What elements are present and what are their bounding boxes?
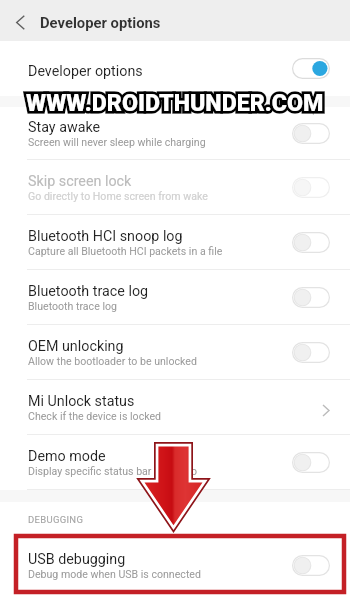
button[interactable]: Stay awake (0, 107, 350, 160)
button[interactable]: USB debugging (0, 536, 350, 594)
staticText: Capture all Bluetooth HCI packets in a f… (28, 245, 223, 257)
staticText: Go directly to Home screen from wake (28, 190, 208, 202)
staticText: DEBUGGING (28, 514, 84, 525)
staticText: WWW.DROIDTHUNDER.COM (26, 89, 324, 116)
staticText: Developer options (40, 14, 161, 31)
staticText: Bluetooth trace log (28, 300, 117, 312)
staticText: WWW.DROIDTHUNDER.COM (26, 89, 324, 116)
staticText: Screen will never sleep while charging (28, 136, 206, 148)
staticText: Display specific status bar for demo (28, 465, 197, 477)
button[interactable]: Demo mode (0, 435, 350, 490)
staticText: Allow the bootloader to be unlocked (28, 355, 197, 367)
button[interactable]: Bluetooth trace log (0, 270, 350, 325)
staticText: Bluetooth trace log (28, 283, 149, 300)
staticText: Mi Unlock status (28, 393, 135, 410)
staticText: Stay awake (28, 119, 101, 136)
button[interactable]: OEM unlocking (0, 325, 350, 380)
button[interactable]: Developer options (0, 41, 350, 96)
staticText: Demo mode (28, 448, 106, 465)
button[interactable]: Bluetooth HCI snoop log (0, 215, 350, 270)
button[interactable]: Skip screen lock (0, 160, 350, 215)
staticText: Bluetooth HCI snoop log (28, 228, 183, 245)
staticText: OEM unlocking (28, 338, 124, 355)
button[interactable]: Back (0, 0, 41, 41)
staticText: USB debugging (28, 551, 126, 568)
staticText: Developer options (28, 63, 143, 80)
staticText: Check if the device is locked (28, 410, 162, 422)
staticText: Debug mode when USB is connected (28, 568, 201, 580)
staticText: Skip screen lock (28, 173, 132, 190)
button[interactable]: Mi Unlock status (0, 380, 350, 435)
